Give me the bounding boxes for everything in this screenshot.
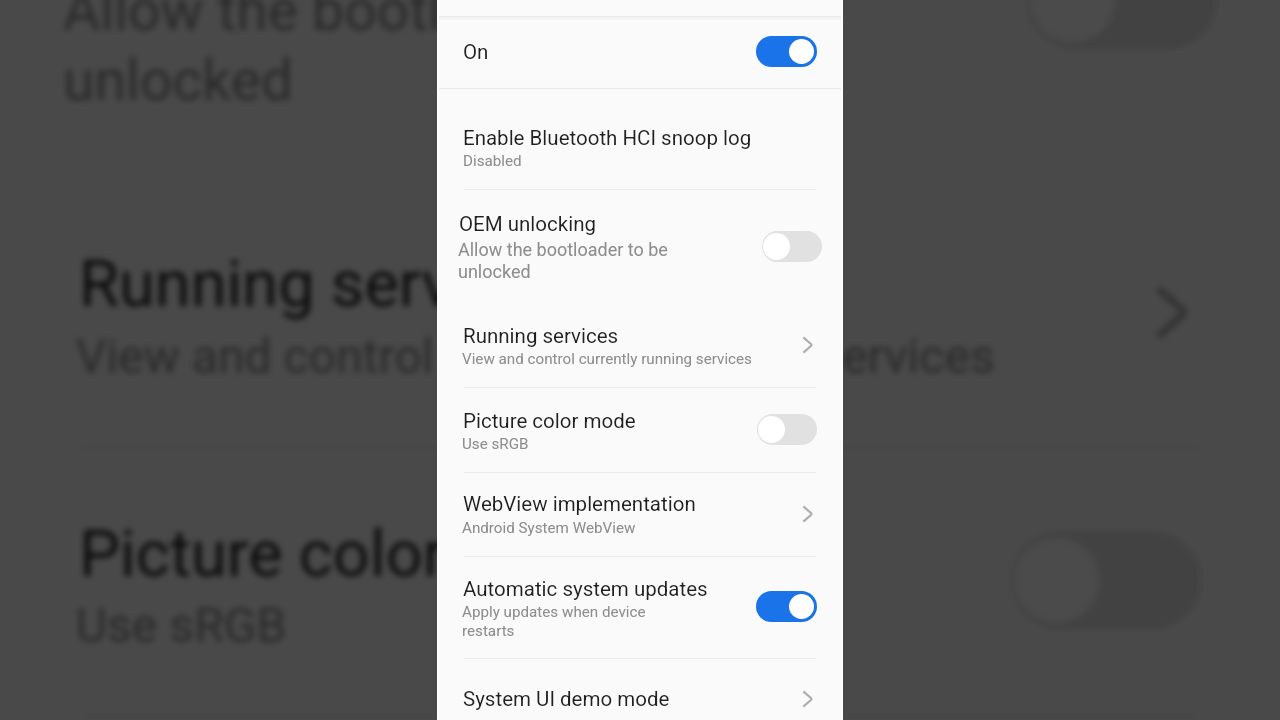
staticText: Enable Bluetooth HCI snoop log bbox=[463, 126, 752, 150]
button[interactable]: On, on bbox=[756, 36, 817, 67]
staticText: View and control currently running servi… bbox=[462, 350, 752, 368]
staticText: WebView implementation bbox=[463, 492, 696, 516]
button[interactable]: Picture color mode bbox=[439, 388, 841, 472]
staticText: Automatic system updates bbox=[463, 577, 708, 601]
staticText: Picture color mode bbox=[463, 409, 636, 433]
staticText: Allow the bootloader to be unlocked bbox=[63, 0, 745, 116]
staticText: System UI demo mode bbox=[463, 687, 670, 711]
staticText: View and control currently running servi… bbox=[76, 328, 995, 385]
button[interactable]: Automatic system updates, on bbox=[756, 591, 817, 622]
button[interactable]: OEM unlocking, off bbox=[762, 231, 822, 262]
staticText: Android System WebView bbox=[462, 519, 636, 537]
staticText: On bbox=[463, 40, 489, 64]
staticText: OEM unlocking bbox=[459, 212, 596, 236]
staticText: Use sRGB bbox=[462, 435, 529, 453]
staticText: Running services bbox=[463, 324, 619, 348]
staticText: Disabled bbox=[463, 152, 522, 170]
button[interactable]: Enable Bluetooth HCI snoop log bbox=[439, 89, 841, 189]
button[interactable]: WebView implementation bbox=[439, 473, 841, 556]
button[interactable]: OEM unlocking bbox=[439, 190, 841, 326]
button[interactable]: Automatic system updates bbox=[439, 557, 841, 658]
staticText: Picture color mode bbox=[79, 515, 627, 591]
button[interactable]: Running services bbox=[439, 326, 841, 387]
button[interactable]: On bbox=[439, 17, 841, 88]
staticText: Running services bbox=[79, 246, 573, 322]
button[interactable]: System UI demo mode bbox=[439, 659, 841, 720]
staticText: Use sRGB bbox=[76, 598, 288, 655]
button[interactable]: Picture color mode, off bbox=[757, 414, 817, 445]
staticText: Allow the bootloader to be unlocked bbox=[458, 239, 673, 283]
staticText: Apply updates when device restarts bbox=[462, 603, 652, 639]
